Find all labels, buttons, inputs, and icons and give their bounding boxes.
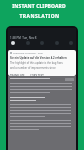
button[interactable]: Quick setting — [55, 41, 59, 45]
button[interactable]: Wi-Fi — [11, 41, 15, 45]
button[interactable]: Quick setting — [40, 41, 44, 45]
staticText: Clipboard Translate · now — [13, 51, 43, 54]
staticText: Sie ein Update auf die Version 4.2 erhal… — [10, 56, 67, 60]
staticText: TRANSLATE — [10, 74, 25, 76]
staticText: INSTANT CLIPBOARD — [12, 3, 66, 10]
button[interactable]: Quick setting — [69, 41, 73, 45]
button[interactable]: Clipboard Translate · now — [8, 50, 76, 76]
staticText: 1:38 PM Tue, Nov 8 — [10, 36, 37, 40]
staticText: and a number of improvements since — [10, 66, 56, 70]
button[interactable]: Quick setting — [26, 41, 30, 45]
button[interactable]: COPY TEXT — [30, 74, 44, 76]
button[interactable]: TRANSLATE — [10, 74, 25, 76]
staticText: TRANSLATION — [19, 13, 60, 20]
staticText: COPY TEXT — [30, 74, 44, 76]
staticText: The highlight of this update is the bug … — [10, 61, 63, 65]
